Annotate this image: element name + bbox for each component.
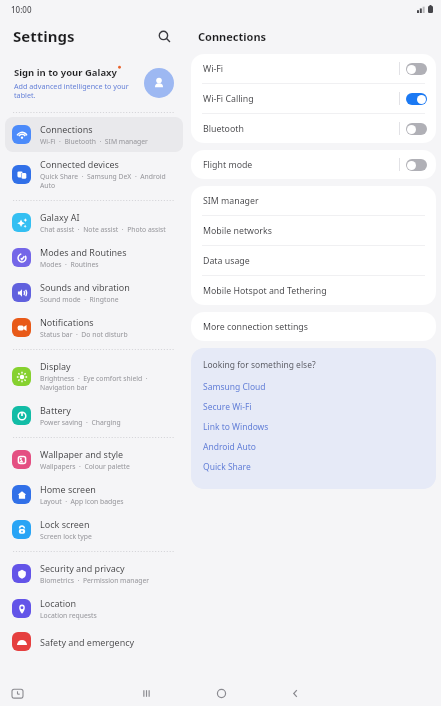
- button[interactable]: Bluetooth: [191, 114, 436, 143]
- staticText: Galaxy AI: [40, 211, 80, 223]
- button[interactable]: Wallpaper and style: [5, 442, 183, 477]
- staticText: Add advanced intelligence to your tablet…: [14, 81, 138, 101]
- staticText: Wi-Fi: [203, 63, 399, 75]
- button[interactable]: On: [406, 93, 427, 105]
- button[interactable]: Galaxy AI: [5, 205, 183, 240]
- button[interactable]: More connection settings: [191, 312, 436, 341]
- staticText: Power saving · Charging: [40, 418, 121, 427]
- staticText: Bluetooth: [203, 123, 399, 135]
- button[interactable]: Lock screen: [5, 512, 183, 547]
- button[interactable]: Samsung Cloud: [203, 377, 424, 397]
- staticText: Quick Share · Samsung DeX · Android Auto: [40, 172, 177, 190]
- staticText: Notifications: [40, 316, 94, 328]
- button[interactable]: Off: [406, 123, 427, 135]
- staticText: Mobile Hotspot and Tethering: [203, 285, 327, 297]
- staticText: Brightness · Eye comfort shield · Naviga…: [40, 374, 177, 392]
- button[interactable]: Samsung account: [144, 68, 174, 98]
- staticText: Location: [40, 597, 77, 609]
- button[interactable]: Home: [208, 680, 234, 706]
- staticText: Home screen: [40, 483, 96, 495]
- button[interactable]: Battery: [5, 398, 183, 433]
- button[interactable]: Taskbar: [8, 684, 26, 702]
- button[interactable]: Location: [5, 591, 183, 626]
- staticText: Location requests: [40, 611, 97, 620]
- button[interactable]: Link to Windows: [203, 417, 424, 437]
- staticText: Sound mode · Ringtone: [40, 295, 119, 304]
- staticText: Sounds and vibration: [40, 281, 130, 293]
- staticText: Android Auto: [203, 441, 256, 453]
- button[interactable]: Off: [406, 159, 427, 171]
- button[interactable]: Home screen: [5, 477, 183, 512]
- button[interactable]: Notifications: [5, 310, 183, 345]
- staticText: 10:00: [11, 4, 32, 15]
- button[interactable]: Off: [406, 63, 427, 75]
- button[interactable]: Sign in to your Galaxy: [0, 54, 188, 112]
- staticText: Security and privacy: [40, 562, 125, 574]
- staticText: Quick Share: [203, 461, 251, 473]
- button[interactable]: Flight mode: [191, 150, 436, 179]
- staticText: Screen lock type: [40, 532, 92, 541]
- staticText: Connections: [40, 123, 93, 135]
- button[interactable]: Connections: [5, 117, 183, 152]
- staticText: More connection settings: [203, 321, 308, 333]
- staticText: Status bar · Do not disturb: [40, 330, 128, 339]
- staticText: Lock screen: [40, 518, 90, 530]
- button[interactable]: Recents: [133, 680, 159, 706]
- button[interactable]: Mobile Hotspot and Tethering: [191, 276, 436, 305]
- button[interactable]: Mobile networks: [191, 216, 436, 245]
- button[interactable]: Search: [152, 24, 176, 48]
- staticText: Samsung Cloud: [203, 381, 266, 393]
- button[interactable]: Quick Share: [203, 457, 424, 477]
- staticText: Connections: [198, 29, 267, 44]
- staticText: SIM manager: [203, 195, 259, 207]
- button[interactable]: Android Auto: [203, 437, 424, 457]
- button[interactable]: Modes and Routines: [5, 240, 183, 275]
- button[interactable]: Wi-Fi Calling: [191, 84, 436, 113]
- staticText: Data usage: [203, 255, 250, 267]
- staticText: Wallpaper and style: [40, 448, 124, 460]
- staticText: Safety and emergency: [40, 636, 135, 648]
- staticText: Looking for something else?: [203, 359, 316, 371]
- staticText: Biometrics · Permission manager: [40, 576, 150, 585]
- staticText: Connected devices: [40, 158, 119, 170]
- staticText: Link to Windows: [203, 421, 269, 433]
- staticText: Modes and Routines: [40, 246, 127, 258]
- button[interactable]: Security and privacy: [5, 556, 183, 591]
- staticText: Mobile networks: [203, 225, 272, 237]
- button[interactable]: Connected devices: [5, 152, 183, 196]
- staticText: Display: [40, 360, 71, 372]
- staticText: Flight mode: [203, 159, 399, 171]
- staticText: Layout · App icon badges: [40, 497, 124, 506]
- button[interactable]: Display: [5, 354, 183, 398]
- button[interactable]: Secure Wi-Fi: [203, 397, 424, 417]
- staticText: Wallpapers · Colour palette: [40, 462, 130, 471]
- staticText: Battery: [40, 404, 71, 416]
- button[interactable]: Back: [282, 680, 308, 706]
- button[interactable]: Sounds and vibration: [5, 275, 183, 310]
- button[interactable]: Safety and emergency: [5, 626, 183, 657]
- staticText: Wi-Fi Calling: [203, 93, 399, 105]
- staticText: Modes · Routines: [40, 260, 99, 269]
- button[interactable]: SIM manager: [191, 186, 436, 215]
- staticText: Chat assist · Note assist · Photo assist: [40, 225, 166, 234]
- staticText: Sign in to your Galaxy: [14, 66, 117, 79]
- button[interactable]: Data usage: [191, 246, 436, 275]
- button[interactable]: Wi-Fi: [191, 54, 436, 83]
- staticText: Secure Wi-Fi: [203, 401, 252, 413]
- staticText: Wi-Fi · Bluetooth · SIM manager: [40, 137, 148, 146]
- staticText: Settings: [13, 26, 75, 46]
